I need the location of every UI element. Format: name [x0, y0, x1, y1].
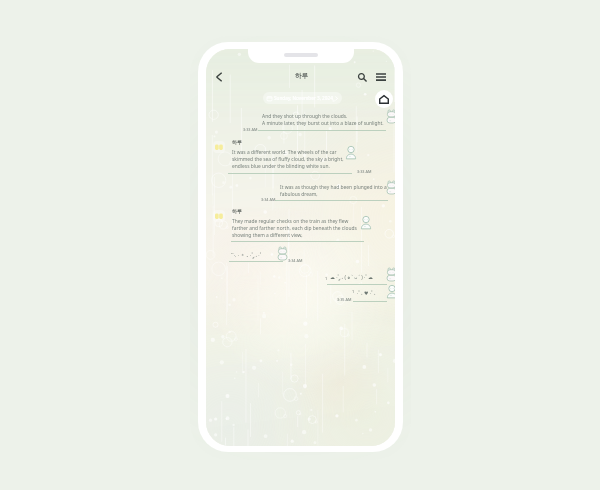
- button[interactable]: Sunday, November 3, 2024: [263, 92, 342, 104]
- staticText: It was a different world. The wheels of …: [232, 149, 337, 156]
- button[interactable]: Profile: [213, 141, 225, 153]
- staticText: endless blue under the blinding white su…: [232, 163, 330, 170]
- button[interactable]: Home: [375, 90, 393, 108]
- staticText: ☁ ·˚ ༘ ₊ ( ๑ ˃ ᴗ ˂ ) ·˚ ☁: [330, 272, 373, 286]
- staticText: 하루: [232, 208, 242, 214]
- button[interactable]: Back: [211, 69, 227, 85]
- staticText: 3:33 AM: [357, 169, 372, 174]
- staticText: showing them a different view,: [232, 232, 303, 239]
- button[interactable]: Profile: [213, 210, 225, 222]
- staticText: A minute later, they burst out into a bl…: [262, 120, 384, 127]
- staticText: ·˚ ₊ ♥ ·˚ ₊: [357, 290, 376, 297]
- staticText: skimmed the sea of fluffy cloud, the sky…: [232, 156, 344, 163]
- staticText: 3:34 AM: [261, 197, 276, 202]
- staticText: 3:35 AM: [337, 297, 352, 302]
- staticText: farther and farther north, each dip bene…: [232, 225, 357, 232]
- staticText: Sunday, November 3, 2024: [274, 95, 333, 101]
- staticText: 하루: [295, 72, 309, 80]
- button[interactable]: Search: [354, 69, 370, 85]
- staticText: 3:33 AM: [243, 127, 258, 132]
- staticText: It was as though they had been plunged i…: [280, 184, 387, 191]
- staticText: fabulous dream,: [280, 191, 318, 198]
- staticText: ˊˋ·. ‧ ＊ ｡ ·˚ ༘ ₊ ·˚: [231, 250, 262, 264]
- staticText: They made regular checks on the train as…: [232, 218, 349, 225]
- button[interactable]: Menu: [373, 69, 389, 85]
- staticText: 1: [352, 289, 355, 294]
- staticText: 3:34 AM: [288, 258, 303, 263]
- staticText: 하루: [232, 139, 242, 145]
- staticText: And they shot up through the clouds.: [262, 113, 348, 120]
- staticText: 1: [325, 276, 328, 281]
